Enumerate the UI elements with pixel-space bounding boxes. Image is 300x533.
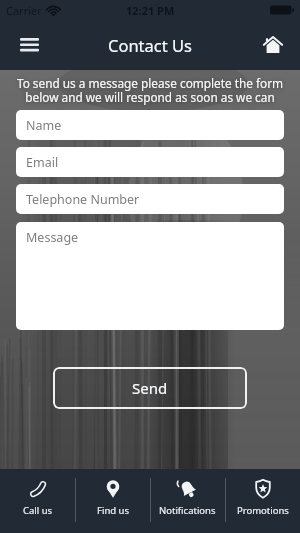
button[interactable] [255,27,291,63]
staticText: Email [26,154,59,171]
staticText: Contact Us [108,34,192,56]
staticText: Carrier [6,3,42,18]
button[interactable]: Email [16,147,284,177]
staticText: Find us [97,504,129,517]
button[interactable]: Call us [0,469,75,533]
button[interactable]: Message [16,222,284,330]
button[interactable]: Send [53,367,247,409]
button[interactable]: Telephone Number [16,184,284,214]
staticText: Call us [23,504,53,517]
staticText: Notifications [159,504,216,517]
staticText: Name [26,117,62,134]
button[interactable] [11,27,47,63]
button[interactable]: Notifications [150,469,225,533]
staticText: Promotions [237,504,289,517]
button[interactable]: Promotions [225,469,300,533]
staticText: 12:21 PM [126,3,175,18]
staticText: To send us a message please complete the… [0,75,300,105]
button[interactable]: Name [16,110,284,140]
staticText: Telephone Number [26,191,140,208]
staticText: Message [26,229,79,246]
button[interactable]: Find us [75,469,150,533]
staticText: Send [132,378,168,398]
